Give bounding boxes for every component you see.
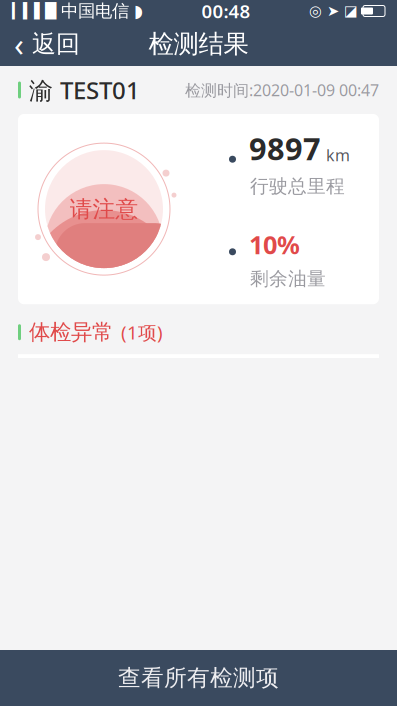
staticText: ▎▍▌█ bbox=[12, 3, 56, 19]
staticText: 请注意 bbox=[69, 195, 138, 223]
staticText: 10% bbox=[249, 228, 300, 261]
button[interactable]: 查看所有检测项 bbox=[0, 650, 397, 706]
staticText: 查看所有检测项 bbox=[118, 664, 279, 692]
staticText: 体检异常 bbox=[29, 319, 113, 345]
staticText: ‹ bbox=[14, 23, 24, 65]
staticText: 中国电信 bbox=[56, 0, 134, 22]
staticText: ◗ bbox=[134, 1, 143, 21]
staticText: 行驶总里程 bbox=[250, 175, 345, 198]
staticText: km bbox=[326, 144, 350, 166]
staticText: 返回 bbox=[32, 29, 80, 59]
staticText: 剩余油量 bbox=[250, 267, 326, 290]
staticText: 检测时间:2020-01-09 00:47 bbox=[185, 79, 379, 101]
staticText: 9897 bbox=[249, 128, 321, 169]
staticText: 渝 TEST01 bbox=[29, 74, 140, 106]
button[interactable]: ‹ bbox=[0, 22, 94, 66]
staticText: ◎ ➤ ◪ bbox=[309, 3, 358, 19]
staticText: 检测结果 bbox=[148, 28, 248, 59]
staticText: (1项) bbox=[121, 320, 163, 345]
staticText: 00:48 bbox=[201, 0, 250, 23]
